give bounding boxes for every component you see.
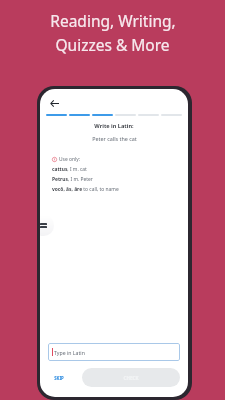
staticText: Quizzes & More xyxy=(55,34,170,55)
staticText: cattus, I m. cat xyxy=(52,166,87,173)
staticText: Peter calls the cat xyxy=(92,135,137,142)
staticText: Use only: xyxy=(59,156,80,163)
button[interactable]: CHECK xyxy=(82,368,180,387)
staticText: Reading, Writing, xyxy=(50,10,176,31)
button[interactable]: Back xyxy=(45,94,63,112)
staticText: vocō, ās, āre to call, to name xyxy=(52,186,119,193)
button[interactable]: SKIP xyxy=(48,371,70,385)
staticText: CHECK xyxy=(123,375,139,381)
staticText: Write in Latin: xyxy=(94,122,134,130)
button[interactable]: Keyboard xyxy=(40,215,54,236)
staticText: Type in Latin xyxy=(54,349,85,356)
button[interactable]: Type in Latin xyxy=(48,343,180,361)
staticText: SKIP xyxy=(54,375,64,381)
staticText: Petrus, I m. Peter xyxy=(52,176,93,183)
